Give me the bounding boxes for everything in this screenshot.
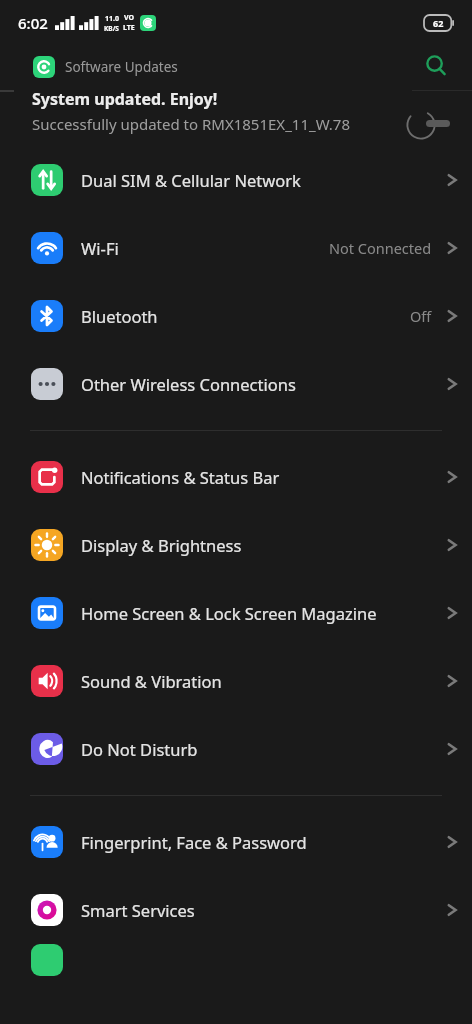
staticText: 11.0 bbox=[105, 14, 119, 24]
staticText: Software Updates bbox=[65, 58, 178, 76]
staticText: Home Screen & Lock Screen Magazine bbox=[81, 602, 442, 624]
staticText: LTE bbox=[123, 23, 135, 33]
button[interactable]: Bluetooth bbox=[0, 282, 472, 350]
staticText: KB/S bbox=[104, 24, 119, 33]
button[interactable]: Sound & Vibration bbox=[0, 647, 472, 715]
staticText: 6:02 bbox=[18, 13, 48, 33]
button[interactable]: Other Wireless Connections bbox=[0, 350, 472, 418]
staticText: Wi-Fi bbox=[81, 237, 329, 259]
button[interactable]: Smart Services bbox=[0, 876, 472, 944]
button[interactable]: Search bbox=[418, 48, 454, 84]
button[interactable]: Wi-Fi bbox=[0, 214, 472, 282]
staticText: Not Connected bbox=[329, 238, 432, 258]
button[interactable]: Fingerprint, Face & Password bbox=[0, 808, 472, 876]
staticText: Off bbox=[410, 306, 432, 326]
button[interactable]: Notifications & Status Bar bbox=[0, 443, 472, 511]
staticText: Notifications & Status Bar bbox=[81, 466, 442, 488]
button[interactable]: Dual SIM & Cellular Network bbox=[0, 146, 472, 214]
staticText: Bluetooth bbox=[81, 305, 410, 327]
button[interactable]: Display & Brightness bbox=[0, 511, 472, 579]
button[interactable]: Home Screen & Lock Screen Magazine bbox=[0, 579, 472, 647]
staticText: Successfully updated to RMX1851EX_11_W.7… bbox=[32, 114, 351, 134]
staticText: 62 bbox=[433, 17, 444, 29]
staticText: Fingerprint, Face & Password bbox=[81, 831, 442, 853]
staticText: Other Wireless Connections bbox=[81, 373, 442, 395]
staticText: Dual SIM & Cellular Network bbox=[81, 169, 442, 191]
button[interactable]: Do Not Disturb bbox=[0, 715, 472, 783]
staticText: Do Not Disturb bbox=[81, 738, 442, 760]
staticText: Display & Brightness bbox=[81, 534, 442, 556]
staticText: System updated. Enjoy! bbox=[32, 88, 218, 110]
staticText: Smart Services bbox=[81, 899, 442, 921]
staticText: Sound & Vibration bbox=[81, 670, 442, 692]
button[interactable] bbox=[0, 944, 472, 984]
staticText: VO bbox=[124, 13, 135, 23]
